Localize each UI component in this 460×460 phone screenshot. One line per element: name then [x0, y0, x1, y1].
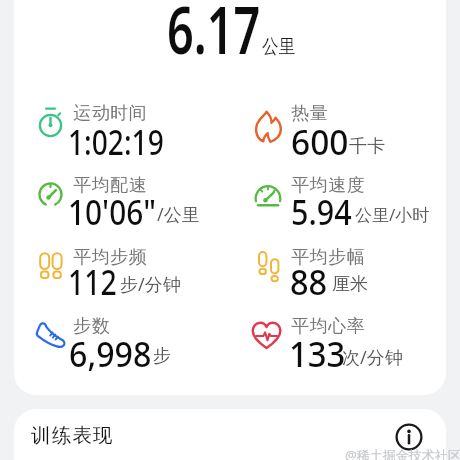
staticText: 平均配速	[73, 174, 147, 197]
staticText: 运动时间	[73, 102, 147, 125]
staticText: 步	[153, 345, 171, 368]
staticText: 热量	[291, 102, 328, 125]
staticText: 公里/小时	[355, 203, 430, 226]
button[interactable]	[394, 422, 424, 452]
staticText: 6,998	[69, 331, 152, 377]
staticText: 600	[291, 119, 349, 165]
staticText: 平均步频	[73, 246, 147, 269]
staticText: 112	[68, 259, 117, 305]
staticText: 1:02:19	[68, 119, 165, 165]
staticText: 6.17	[167, 0, 261, 74]
staticText: /公里	[157, 202, 200, 227]
staticText: 133	[289, 331, 346, 377]
staticText: @稀土掘金技术社区	[345, 446, 460, 460]
button[interactable]	[14, 409, 446, 460]
staticText: 88	[290, 259, 328, 305]
staticText: 平均步幅	[291, 246, 365, 269]
staticText: 10'06"	[68, 189, 156, 235]
staticText: 步数	[73, 315, 110, 338]
staticText: 千卡	[349, 135, 385, 158]
staticText: 步/分钟	[120, 272, 181, 297]
staticText: 训练表现	[31, 423, 114, 448]
staticText: 厘米	[332, 273, 368, 296]
staticText: 公里	[262, 34, 295, 59]
staticText: 5.94	[291, 189, 352, 235]
staticText: 平均心率	[291, 315, 365, 338]
staticText: 平均速度	[291, 174, 365, 197]
staticText: 次/分钟	[342, 345, 403, 370]
